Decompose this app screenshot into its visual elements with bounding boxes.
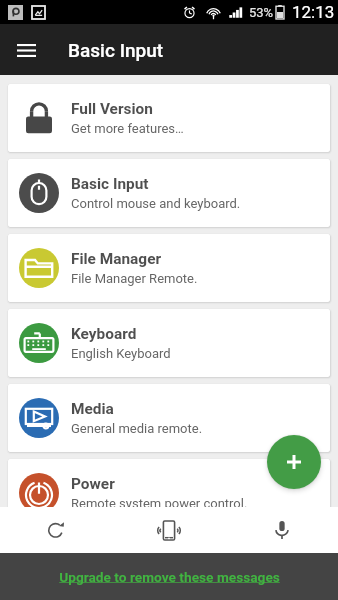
staticText: English Keyboard <box>71 346 171 361</box>
button[interactable]: Keyboard <box>8 309 330 377</box>
staticText: Control mouse and keyboard. <box>71 196 241 211</box>
staticText: 12:13 <box>292 2 335 22</box>
staticText: File Manager <box>71 250 162 268</box>
staticText: Remote system power control. <box>71 496 248 507</box>
button[interactable]: Full Version <box>8 84 330 152</box>
staticText: File Manager Remote. <box>71 271 198 286</box>
staticText: Power <box>71 475 115 493</box>
staticText: 53% <box>249 5 274 20</box>
staticText: Upgrade to remove these messages <box>59 569 280 585</box>
button[interactable]: Power <box>8 459 330 507</box>
button[interactable]: Voice input <box>225 507 338 553</box>
staticText: Basic Input <box>71 175 149 193</box>
button[interactable]: Open navigation drawer <box>6 30 46 70</box>
staticText: Full Version <box>71 100 153 118</box>
button[interactable]: Refresh <box>0 507 112 553</box>
staticText: Basic Input <box>68 39 164 61</box>
button[interactable]: File Manager <box>8 234 330 302</box>
staticText: Media <box>71 400 114 418</box>
staticText: General media remote. <box>71 421 203 436</box>
button[interactable]: Upgrade to remove these messages <box>0 553 338 600</box>
staticText: Keyboard <box>71 325 137 343</box>
button[interactable]: Basic Input <box>8 159 330 227</box>
staticText: Get more features… <box>71 121 184 136</box>
button[interactable]: Media <box>8 384 330 452</box>
button[interactable]: Add <box>267 435 321 489</box>
button[interactable]: Vibrate <box>112 507 225 553</box>
